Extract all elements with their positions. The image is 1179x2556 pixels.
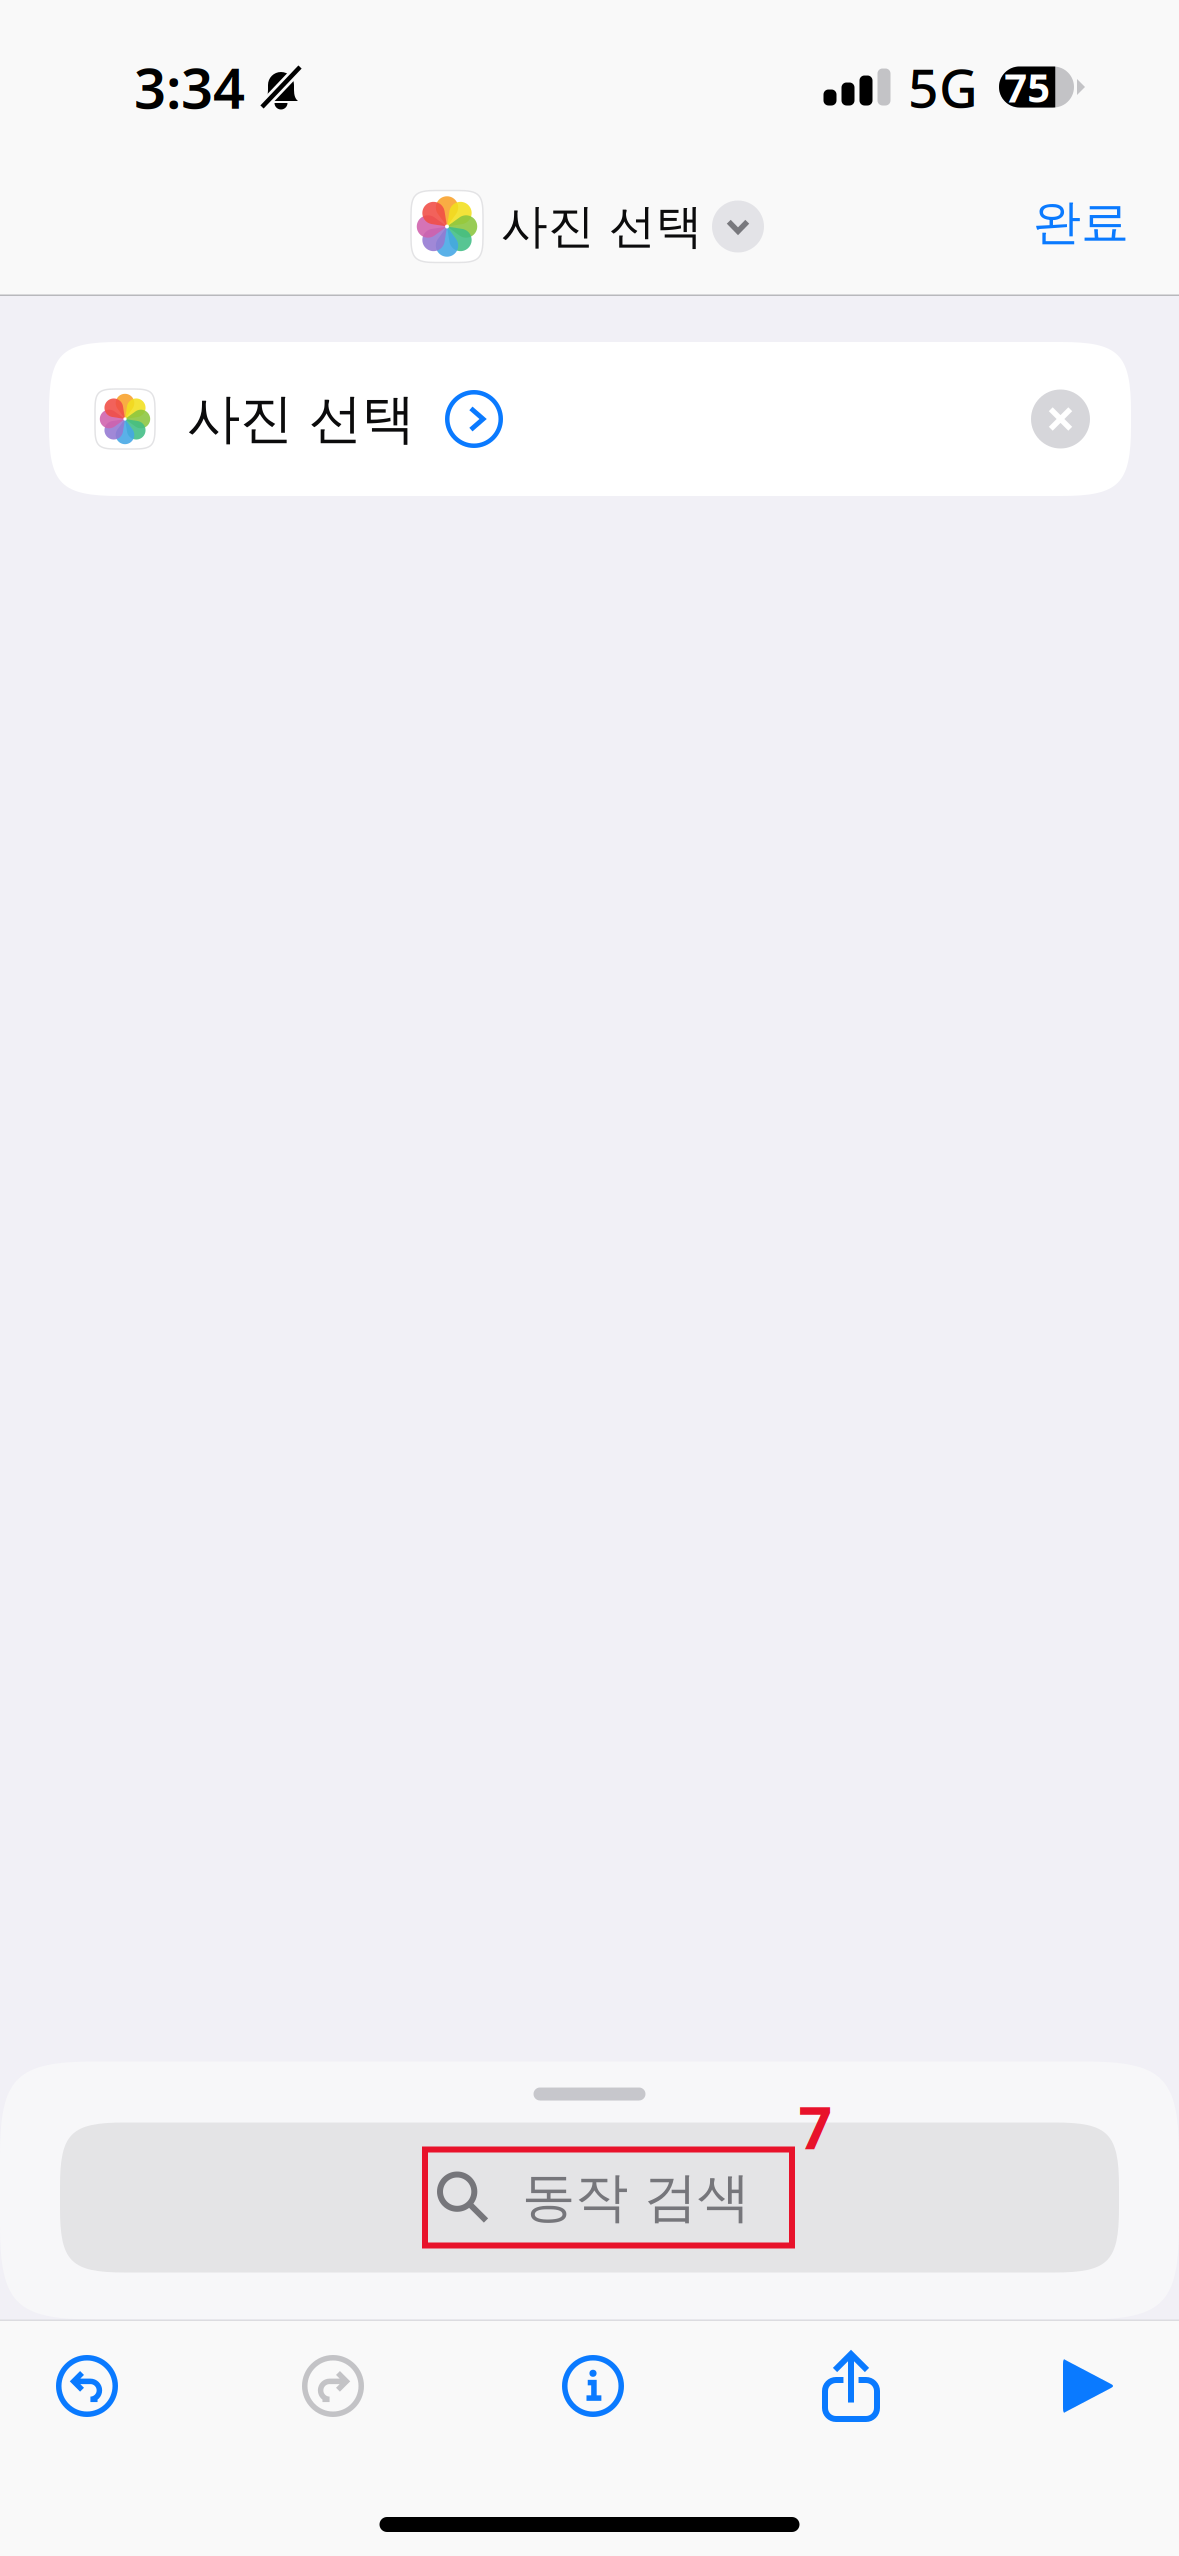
staticText: 5G <box>908 52 978 122</box>
staticText: 75 <box>1004 60 1050 113</box>
button[interactable]: 실행 <box>1008 2330 1170 2442</box>
staticText: 사진 선택 <box>501 198 703 255</box>
button[interactable]: 동작 제거 <box>1031 389 1090 448</box>
button[interactable]: 동작 검색 <box>60 2122 1119 2272</box>
staticText: 7 <box>798 2087 832 2165</box>
button[interactable]: 사진 선택 <box>413 176 766 268</box>
button[interactable]: 다시 실행 <box>174 2330 492 2442</box>
staticText: 사진 선택 <box>187 386 415 452</box>
staticText: 완료 <box>1033 193 1129 252</box>
button[interactable]: 세부사항 <box>492 2330 694 2442</box>
button[interactable]: 공유 <box>694 2330 1008 2442</box>
button[interactable]: 완료 <box>1003 173 1159 272</box>
button[interactable]: 사진 선택 <box>49 342 1131 496</box>
button[interactable]: 실행 취소 <box>0 2330 174 2442</box>
staticText: 3:34 <box>134 50 245 124</box>
staticText: 동작 검색 <box>522 2165 750 2230</box>
